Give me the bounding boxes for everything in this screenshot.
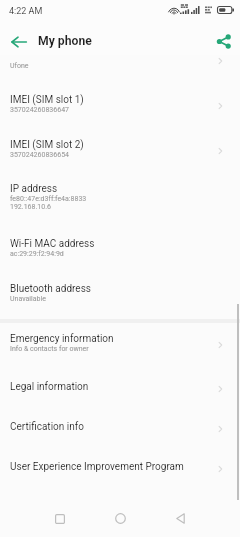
staticText: Legal information [10, 381, 89, 393]
staticText: ac:29:29:f2:94:9d [10, 250, 64, 258]
staticText: User Experience Improvement Program [10, 461, 184, 473]
staticText: IMEI (SIM slot 1) [10, 94, 84, 106]
button[interactable]: IMEI (SIM slot 1) [0, 94, 240, 114]
staticText: fe80::47e:d3ff:fe4a:8833 [10, 195, 87, 203]
button[interactable]: Recents [36, 500, 84, 537]
staticText: 357024260836647 [10, 106, 70, 114]
button[interactable]: Back [0, 22, 33, 55]
staticText: Wi-Fi MAC address [10, 238, 95, 250]
button[interactable]: User Experience Improvement Program [0, 461, 240, 473]
button[interactable]: Wi-Fi MAC address [0, 238, 240, 258]
button[interactable]: Emergency information [0, 333, 240, 353]
button[interactable]: Share [207, 22, 240, 55]
button[interactable]: Home [96, 500, 144, 537]
staticText: 4:22 AM [9, 6, 43, 17]
staticText: Emergency information [10, 333, 114, 345]
staticText: 357024260836654 [10, 151, 70, 159]
staticText: IMEI (SIM slot 2) [10, 139, 84, 151]
staticText: Bluetooth address [10, 283, 91, 295]
button[interactable]: Ufone [0, 62, 240, 70]
button[interactable]: Back [156, 500, 204, 537]
button[interactable]: Bluetooth address [0, 283, 240, 303]
button[interactable]: IP address [0, 183, 240, 211]
staticText: Info & contacts for owner [10, 345, 89, 353]
staticText: My phone [38, 34, 92, 48]
button[interactable]: Legal information [0, 381, 240, 393]
staticText: Ufone [10, 62, 29, 70]
staticText: IP address [10, 183, 58, 195]
staticText: Unavailable [10, 295, 46, 303]
staticText: Certification info [10, 421, 84, 433]
button[interactable]: IMEI (SIM slot 2) [0, 139, 240, 159]
button[interactable]: Certification info [0, 421, 240, 433]
staticText: 192.168.10.6 [10, 203, 51, 211]
